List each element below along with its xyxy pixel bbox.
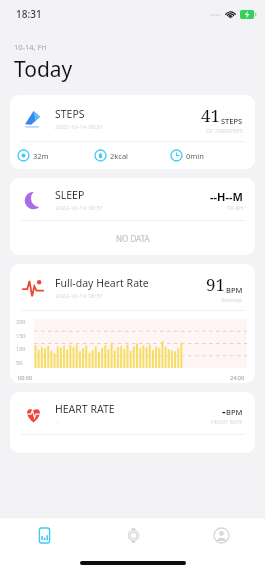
button[interactable]: Devices: [89, 518, 177, 552]
staticText: 91: [206, 273, 226, 296]
staticText: 0min: [186, 151, 204, 161]
staticText: 24:00: [230, 374, 245, 381]
staticText: Full-day Heart Rate: [55, 276, 149, 290]
staticText: STEPS: [55, 107, 85, 121]
staticText: 200: [16, 318, 26, 325]
staticText: 2kcal: [110, 151, 129, 161]
staticText: 150: [16, 332, 26, 339]
staticText: Average: [221, 296, 243, 303]
button[interactable]: SLEEP: [10, 178, 255, 255]
staticText: 100: [16, 345, 26, 352]
staticText: 41: [201, 104, 221, 127]
button[interactable]: 2kcal: [95, 150, 171, 161]
button[interactable]: HEART RATE: [10, 392, 255, 453]
button[interactable]: 32m: [18, 150, 95, 161]
staticText: 2022-10-14 18:31: [55, 123, 104, 131]
button[interactable]: Full-day Heart Rate: [10, 264, 255, 383]
staticText: HEART RATE: [211, 418, 243, 425]
staticText: BPM: [226, 407, 243, 417]
staticText: 2022-10-14 18:31: [55, 292, 104, 300]
staticText: 00:00: [18, 374, 33, 381]
staticText: 2022-10-14 18:31: [55, 204, 104, 212]
staticText: --: [55, 418, 59, 426]
staticText: HEART RATE: [55, 402, 115, 416]
button[interactable]: 0min: [171, 150, 247, 161]
button[interactable]: Statistics: [0, 518, 89, 552]
staticText: 10-14, Fri: [14, 42, 47, 52]
staticText: --H--M: [210, 189, 243, 204]
button[interactable]: Profile: [177, 518, 265, 552]
staticText: OF 8H: [227, 204, 243, 211]
staticText: NO DATA: [116, 233, 150, 244]
button[interactable]: STEPS: [10, 95, 255, 169]
staticText: 50: [16, 359, 23, 366]
staticText: 18:31: [16, 7, 42, 21]
staticText: STEPS: [221, 116, 243, 126]
staticText: Today: [14, 55, 73, 84]
staticText: SLEEP: [55, 188, 85, 202]
staticText: -: [222, 403, 226, 418]
staticText: 32m: [33, 151, 49, 161]
staticText: OF 7000STEPS: [206, 127, 243, 134]
staticText: BPM: [226, 285, 243, 295]
